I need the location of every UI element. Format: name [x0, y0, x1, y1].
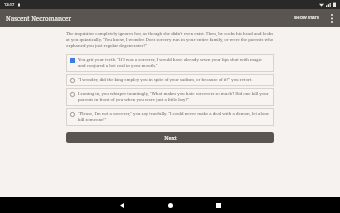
button[interactable]: Leaning in, you whisper tauntingly, "Wha…: [66, 88, 274, 106]
button[interactable]: "Please, I'm not a sorcerer," you say te…: [66, 108, 274, 126]
staticText: "Please, I'm not a sorcerer," you say te…: [78, 111, 270, 123]
staticText: SHOW STATS: [294, 15, 320, 21]
staticText: Nascent Necromancer: [6, 14, 72, 22]
staticText: Leaning in, you whisper tauntingly, "Wha…: [78, 91, 270, 103]
staticText: "I wonder, did the king employ you in sp…: [78, 77, 253, 83]
button[interactable]: Home: [159, 197, 181, 213]
button[interactable]: Recent apps: [207, 197, 229, 213]
button[interactable]: You grit your teeth. "If I was a sorcere…: [66, 54, 274, 72]
button[interactable]: "I wonder, did the king employ you in sp…: [66, 74, 274, 86]
button[interactable]: SHOW STATS: [290, 12, 324, 24]
button[interactable]: More options: [324, 10, 340, 26]
staticText: Next: [164, 134, 177, 141]
staticText: The inquisitor completely ignores her, a…: [66, 31, 274, 49]
staticText: You grit your teeth. "If I was a sorcere…: [78, 57, 270, 69]
button[interactable]: Back: [111, 197, 133, 213]
staticText: 12:17: [4, 2, 15, 7]
button[interactable]: Next: [66, 132, 274, 143]
